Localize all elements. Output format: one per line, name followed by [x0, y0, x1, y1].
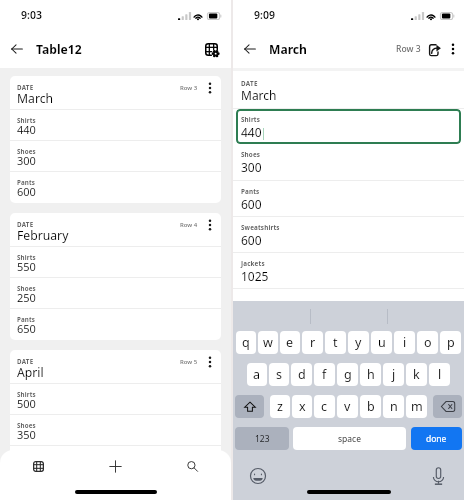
button[interactable]: Back	[5, 37, 29, 61]
staticText: space	[338, 433, 361, 445]
staticText: j	[392, 366, 396, 383]
button[interactable]: Jackets	[233, 253, 464, 288]
staticText: v	[344, 398, 351, 415]
button[interactable]: Back	[238, 37, 262, 61]
button[interactable]: done	[411, 427, 462, 450]
button[interactable]: Shoes	[10, 141, 221, 171]
button[interactable]: DATE	[233, 71, 464, 108]
staticText: o	[424, 334, 432, 351]
staticText: Row 3	[396, 43, 421, 55]
button[interactable]: e	[280, 331, 300, 354]
staticText: Row 3	[180, 84, 198, 92]
staticText: 700	[17, 458, 36, 473]
staticText: Shirts	[17, 116, 36, 124]
button[interactable]: Row options	[203, 218, 216, 231]
staticText: e	[286, 334, 294, 351]
staticText: 600	[241, 232, 262, 248]
staticText: Shoes	[17, 421, 36, 429]
button[interactable]: d	[291, 363, 312, 386]
button[interactable]: Shoes	[10, 415, 221, 445]
button[interactable]: Shirts	[10, 247, 221, 277]
staticText: Shirts	[17, 253, 36, 261]
staticText: 600	[241, 196, 262, 212]
staticText: m	[411, 398, 423, 415]
button[interactable]: Add record	[77, 453, 154, 479]
button[interactable]: Pants	[10, 309, 221, 340]
staticText: x	[299, 398, 306, 415]
staticText: Pants	[241, 187, 260, 196]
button[interactable]: Shoes	[10, 278, 221, 308]
button[interactable]: Shift	[235, 395, 264, 418]
staticText: Pants	[17, 178, 36, 186]
button[interactable]: Tables	[0, 453, 77, 479]
button[interactable]: Pants	[233, 181, 464, 216]
button[interactable]: Sweatshirts	[233, 217, 464, 252]
staticText: 9:03	[21, 8, 42, 22]
button[interactable]: s	[269, 363, 289, 386]
button[interactable]: w	[258, 331, 278, 354]
staticText: 350	[17, 427, 36, 442]
button[interactable]: x	[292, 395, 312, 418]
button[interactable]: Shirts	[10, 110, 221, 140]
button[interactable]: v	[337, 395, 358, 418]
staticText: April	[17, 364, 44, 381]
button[interactable]: t	[325, 331, 346, 354]
button[interactable]: Share	[426, 41, 443, 58]
staticText: DATE	[241, 79, 258, 88]
button[interactable]: l	[429, 363, 450, 386]
button[interactable]: k	[406, 363, 427, 386]
button[interactable]: y	[348, 331, 369, 354]
button[interactable]: Pants	[10, 172, 221, 203]
staticText: March	[17, 90, 54, 107]
button[interactable]: Table settings	[201, 39, 221, 59]
button[interactable]: Emoji keyboard	[250, 468, 266, 484]
staticText: 300	[17, 153, 36, 168]
staticText: Row 5	[180, 358, 198, 366]
staticText: a	[253, 366, 261, 383]
button[interactable]: Row options	[203, 81, 216, 94]
button[interactable]: Shirts	[10, 384, 221, 414]
staticText: t	[333, 334, 338, 351]
staticText: d	[298, 366, 306, 383]
button[interactable]: p	[440, 331, 461, 354]
staticText: 440	[241, 124, 262, 140]
staticText: Jackets	[241, 259, 265, 268]
button[interactable]: u	[371, 331, 392, 354]
button[interactable]: z	[270, 395, 290, 418]
button[interactable]: a	[247, 363, 267, 386]
button[interactable]: Backspace	[433, 395, 462, 418]
staticText: 600	[17, 184, 36, 199]
button[interactable]: g	[337, 363, 358, 386]
button[interactable]: Row options	[203, 355, 216, 368]
staticText: DATE	[17, 83, 34, 91]
staticText: Table12	[36, 41, 82, 57]
button[interactable]: o	[417, 331, 438, 354]
staticText: r	[310, 334, 316, 351]
button[interactable]: Shirts	[236, 109, 461, 144]
staticText: Row 4	[180, 221, 198, 229]
button[interactable]: c	[314, 395, 335, 418]
staticText: c	[321, 398, 328, 415]
button[interactable]: Shoes	[233, 144, 464, 180]
button[interactable]: q	[236, 331, 256, 354]
button[interactable]: h	[360, 363, 381, 386]
button[interactable]: b	[360, 395, 381, 418]
button[interactable]: Pants	[10, 446, 221, 477]
staticText: g	[344, 366, 352, 383]
staticText: Shirts	[241, 115, 261, 124]
button[interactable]: space	[293, 427, 406, 450]
button[interactable]: j	[383, 363, 404, 386]
button[interactable]: r	[302, 331, 323, 354]
button[interactable]: n	[383, 395, 404, 418]
staticText: 123	[255, 433, 270, 445]
button[interactable]: More options	[445, 41, 461, 57]
button[interactable]: 123	[235, 427, 289, 450]
staticText: u	[378, 334, 386, 351]
button[interactable]: m	[406, 395, 427, 418]
button[interactable]: i	[394, 331, 415, 354]
staticText: DATE	[17, 220, 34, 228]
button[interactable]: Dictation	[432, 467, 445, 485]
button[interactable]: Search	[154, 453, 231, 479]
button[interactable]: f	[314, 363, 335, 386]
